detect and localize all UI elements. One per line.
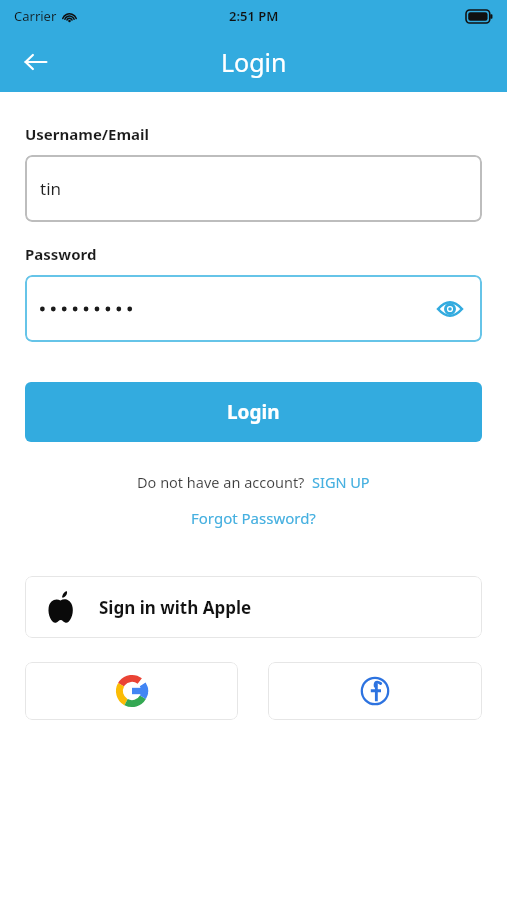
button[interactable]: Sign in with Google bbox=[25, 662, 238, 720]
staticText: Password bbox=[25, 244, 97, 264]
staticText: SIGN UP bbox=[312, 472, 370, 492]
staticText: Username/Email bbox=[25, 124, 150, 144]
button[interactable]: Show password bbox=[433, 292, 467, 326]
staticText: tin bbox=[40, 177, 62, 200]
button[interactable]: Show password bbox=[25, 275, 482, 342]
button[interactable]: Sign in with Facebook bbox=[268, 662, 482, 720]
staticText: Sign in with Apple bbox=[99, 596, 252, 619]
button[interactable]: Back bbox=[14, 40, 58, 84]
staticText: Forgot Password? bbox=[191, 508, 316, 528]
button[interactable]: Login bbox=[25, 382, 482, 442]
button[interactable]: SIGN UP bbox=[312, 472, 370, 492]
button[interactable]: Forgot Password? bbox=[191, 508, 316, 528]
staticText: 2:51 PM bbox=[229, 7, 279, 25]
staticText: Do not have an account? bbox=[137, 472, 305, 492]
button[interactable]: Sign in with Apple bbox=[25, 576, 482, 638]
staticText: Login bbox=[227, 399, 280, 425]
staticText: Carrier bbox=[14, 7, 57, 25]
staticText: Login bbox=[221, 45, 287, 79]
button[interactable]: tin bbox=[25, 155, 482, 222]
